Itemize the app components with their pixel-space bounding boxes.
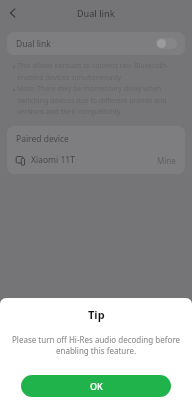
staticText: Mine bbox=[157, 155, 176, 166]
staticText: Please turn off Hi-Res audio decoding be… bbox=[11, 334, 181, 356]
button[interactable]: Dual link toggle bbox=[156, 38, 177, 49]
staticText: Dual link bbox=[16, 38, 51, 50]
button[interactable]: Xiaomi 11T bbox=[7, 153, 185, 167]
staticText: Dual link bbox=[77, 7, 115, 19]
button[interactable]: OK bbox=[21, 375, 171, 397]
button[interactable]: Back bbox=[0, 0, 26, 26]
button[interactable]: Dual link bbox=[7, 32, 185, 55]
staticText: Note: There may be momentary delay when … bbox=[17, 84, 181, 116]
staticText: Tip bbox=[88, 307, 105, 322]
staticText: Paired device bbox=[16, 133, 69, 145]
staticText: This allows earbuds to connect two Bluet… bbox=[17, 61, 181, 82]
staticText: OK bbox=[90, 380, 103, 392]
staticText: Xiaomi 11T bbox=[31, 154, 75, 166]
